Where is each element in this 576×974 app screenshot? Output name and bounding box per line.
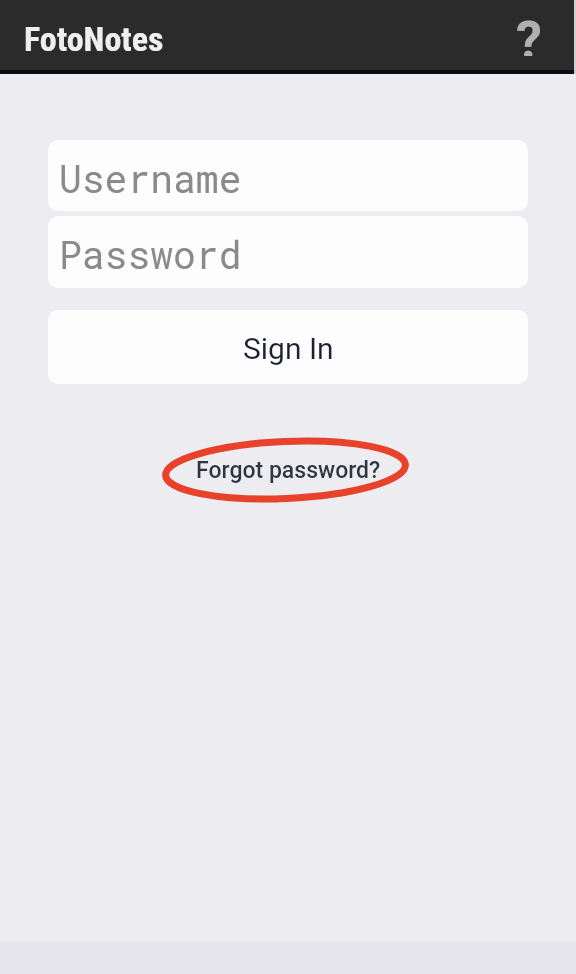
staticText: Username (59, 153, 242, 203)
button[interactable]: Sign In (48, 310, 528, 384)
staticText: ? (516, 10, 542, 56)
staticText: Forgot password? (196, 457, 381, 484)
staticText: Sign In (243, 331, 334, 366)
staticText: FotoNotes (24, 19, 164, 59)
button[interactable]: ? (506, 14, 552, 60)
button[interactable]: Username (48, 140, 528, 211)
button[interactable]: Password (48, 216, 528, 288)
button[interactable]: Forgot password? (162, 438, 409, 502)
staticText: Password (59, 229, 242, 279)
